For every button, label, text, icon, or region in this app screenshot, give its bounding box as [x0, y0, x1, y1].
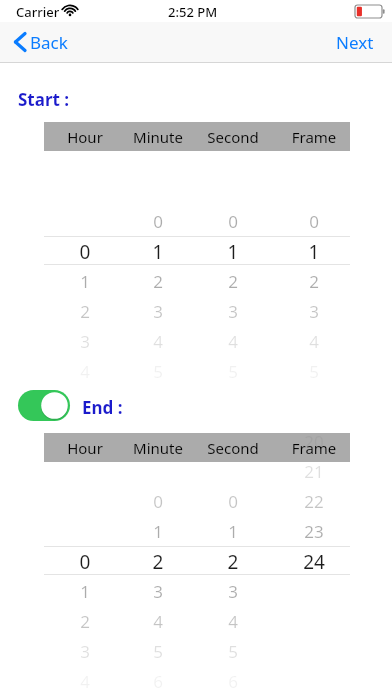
- staticText: 2: [108, 270, 208, 293]
- staticText: Back: [30, 31, 68, 54]
- staticText: 3: [35, 640, 135, 663]
- staticText: 0: [183, 490, 283, 513]
- staticText: 1: [108, 239, 208, 265]
- staticText: Hour: [35, 438, 135, 458]
- staticText: 2: [108, 549, 208, 575]
- staticText: 4: [108, 610, 208, 633]
- staticText: 22: [264, 490, 364, 513]
- staticText: 3: [183, 580, 283, 603]
- staticText: 1: [264, 239, 364, 265]
- staticText: 3: [108, 580, 208, 603]
- staticText: 1: [35, 580, 135, 603]
- staticText: 2: [183, 549, 283, 575]
- staticText: 2: [35, 300, 135, 323]
- staticText: 0: [108, 210, 208, 233]
- staticText: Second: [183, 127, 283, 147]
- staticText: 0: [183, 210, 283, 233]
- button[interactable]: Next: [330, 24, 386, 60]
- staticText: Start :: [18, 88, 70, 111]
- staticText: Frame: [264, 438, 364, 458]
- staticText: 2:52 PM: [168, 3, 218, 21]
- staticText: 3: [264, 300, 364, 323]
- staticText: 4: [108, 330, 208, 353]
- staticText: Minute: [108, 127, 208, 147]
- staticText: 2: [264, 270, 364, 293]
- staticText: 0: [264, 210, 364, 233]
- staticText: 4: [183, 610, 283, 633]
- staticText: 0: [108, 490, 208, 513]
- staticText: Carrier: [16, 3, 60, 21]
- staticText: Hour: [35, 127, 135, 147]
- staticText: 0: [35, 549, 135, 575]
- button[interactable]: Enable end time: [18, 390, 70, 421]
- staticText: 2: [35, 610, 135, 633]
- staticText: 3: [108, 300, 208, 323]
- staticText: 21: [264, 460, 364, 483]
- staticText: 4: [183, 330, 283, 353]
- staticText: 5: [108, 640, 208, 663]
- staticText: Frame: [264, 127, 364, 147]
- staticText: 3: [35, 330, 135, 353]
- staticText: 0: [35, 239, 135, 265]
- staticText: 1: [183, 520, 283, 543]
- staticText: 3: [183, 300, 283, 323]
- staticText: 23: [264, 520, 364, 543]
- staticText: 5: [183, 640, 283, 663]
- staticText: 20: [264, 430, 364, 453]
- staticText: 2: [183, 270, 283, 293]
- staticText: Minute: [108, 438, 208, 458]
- staticText: 1: [35, 270, 135, 293]
- staticText: 4: [264, 330, 364, 353]
- staticText: Next: [336, 31, 374, 54]
- staticText: 1: [108, 520, 208, 543]
- staticText: 1: [183, 239, 283, 265]
- button[interactable]: Back: [6, 24, 90, 60]
- staticText: End :: [82, 396, 123, 419]
- staticText: 24: [264, 549, 364, 575]
- staticText: Second: [183, 438, 283, 458]
